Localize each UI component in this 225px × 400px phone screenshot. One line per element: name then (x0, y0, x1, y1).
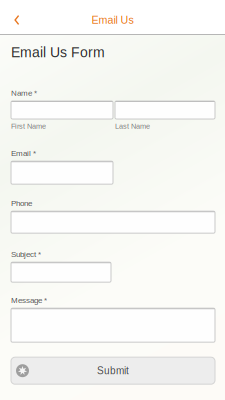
staticText: Email Us Form (11, 45, 105, 60)
staticText: Message * (11, 296, 47, 305)
staticText: Email Us (91, 14, 133, 26)
staticText: Subject * (11, 250, 41, 259)
staticText: Name * (11, 88, 37, 97)
staticText: Email * (11, 149, 36, 158)
staticText: First Name (11, 122, 46, 130)
staticText: Submit (97, 365, 129, 376)
staticText: Last Name (115, 122, 150, 130)
button[interactable]: Submit (11, 357, 215, 384)
staticText: Phone (11, 199, 32, 208)
button[interactable]: Back (0, 9, 34, 31)
